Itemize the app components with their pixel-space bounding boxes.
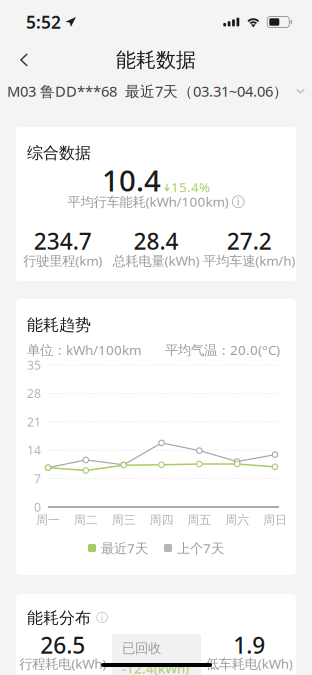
staticText: 最近7天: [101, 539, 148, 557]
staticText: 27.2: [227, 226, 272, 256]
staticText: ⓘ: [96, 610, 108, 625]
staticText: 上个7天: [177, 539, 224, 557]
staticText: 能耗数据: [116, 48, 196, 72]
staticText: 7: [34, 471, 41, 486]
staticText: 平均车速(km/h): [203, 252, 295, 269]
staticText: 能耗趋势: [27, 315, 91, 335]
staticText: 总耗电量(kWh): [112, 252, 199, 269]
staticText: 周六: [225, 513, 249, 527]
staticText: 行驶里程(km): [23, 252, 102, 269]
staticText: 5:52: [26, 10, 61, 33]
staticText: 1.9: [233, 630, 265, 660]
staticText: M03 鲁DD***68: [7, 81, 117, 101]
staticText: 0: [34, 499, 41, 515]
staticText: 周一: [36, 513, 60, 527]
staticText: 综合数据: [27, 143, 91, 163]
staticText: 周二: [74, 513, 98, 527]
button[interactable]: M03 鲁DD***68: [7, 75, 117, 107]
staticText: 周三: [112, 513, 136, 527]
staticText: 28: [27, 385, 41, 401]
staticText: 最近7天（03.31~04.06）: [125, 81, 288, 101]
staticText: 平均气温：20.0(°C): [165, 341, 280, 359]
staticText: 26.5: [40, 630, 85, 660]
staticText: 周日: [263, 513, 287, 527]
staticText: 低车耗电(kWh): [206, 655, 293, 672]
staticText: 15.4%: [171, 178, 210, 196]
staticText: 10.4: [102, 160, 161, 199]
staticText: 能耗分布: [27, 608, 91, 628]
staticText: 21: [27, 414, 41, 430]
staticText: 14: [27, 442, 41, 458]
staticText: -12.4(kWh): [122, 659, 189, 675]
staticText: 28.4: [133, 226, 178, 256]
staticText: 周四: [149, 513, 173, 527]
staticText: 234.7: [34, 226, 92, 256]
staticText: 已回收: [122, 640, 161, 656]
staticText: 周五: [187, 513, 211, 527]
button[interactable]: 返回: [0, 44, 44, 76]
staticText: 单位：kWh/100km: [27, 341, 141, 359]
staticText: 平均行车能耗(kWh/100km) ⓘ: [67, 193, 244, 210]
staticText: 行程耗电(kWh): [19, 655, 106, 672]
staticText: 35: [27, 357, 41, 373]
button[interactable]: 最近7天（03.31~04.06）: [125, 75, 305, 107]
